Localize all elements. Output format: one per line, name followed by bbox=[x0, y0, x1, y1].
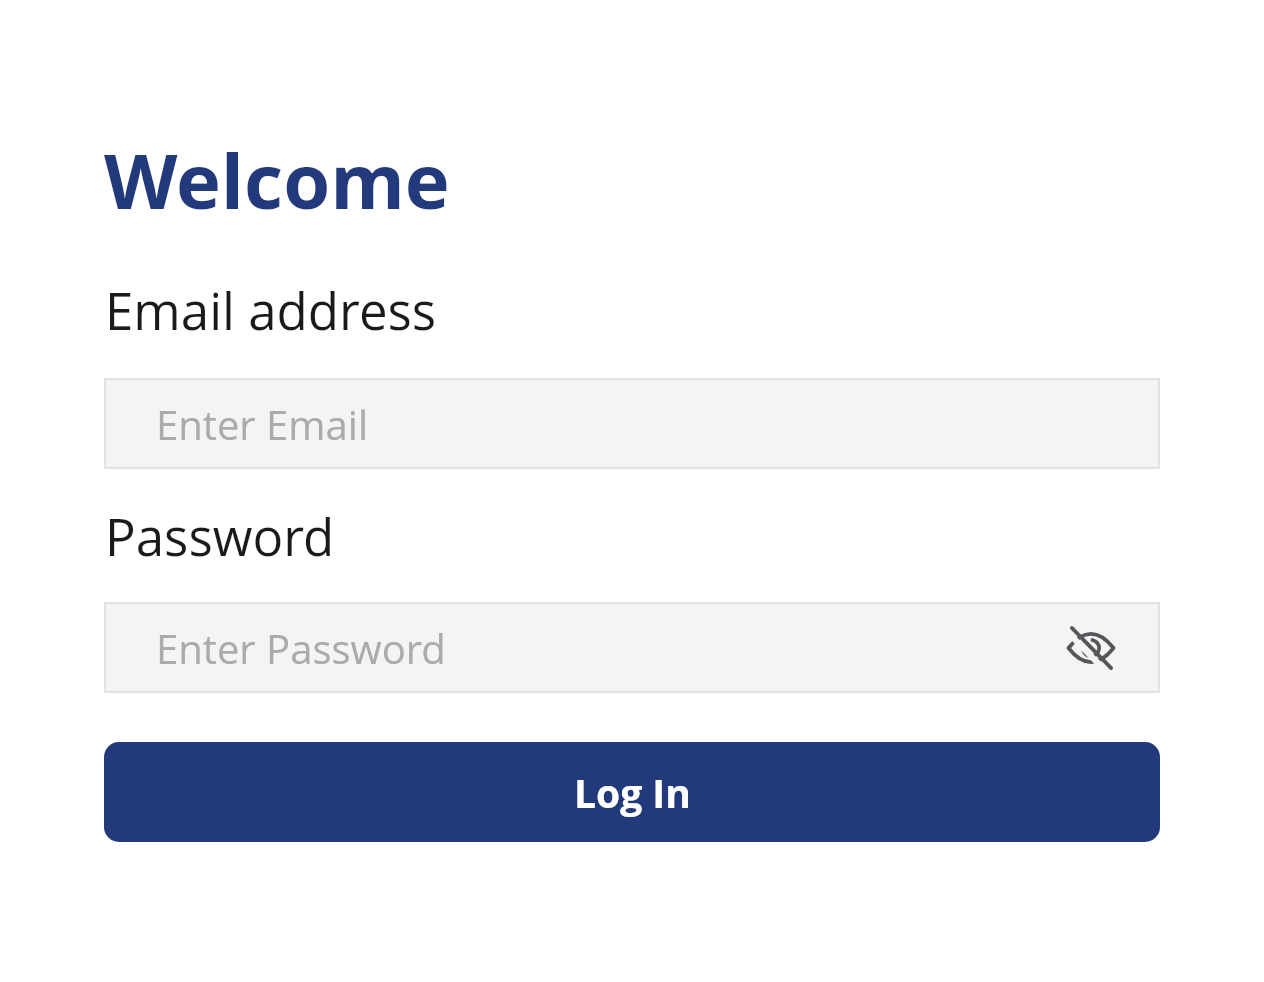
staticText: Password bbox=[105, 501, 335, 570]
button[interactable] bbox=[1067, 624, 1115, 672]
button[interactable]: Log In bbox=[104, 742, 1160, 842]
staticText: Enter Password bbox=[156, 621, 446, 675]
staticText: Email address bbox=[105, 275, 437, 344]
button[interactable]: Enter Email bbox=[104, 378, 1160, 469]
staticText: Log In bbox=[574, 766, 691, 819]
staticText: Welcome bbox=[104, 128, 450, 231]
button[interactable]: Enter Password bbox=[104, 602, 1160, 693]
staticText: Enter Email bbox=[156, 397, 369, 451]
